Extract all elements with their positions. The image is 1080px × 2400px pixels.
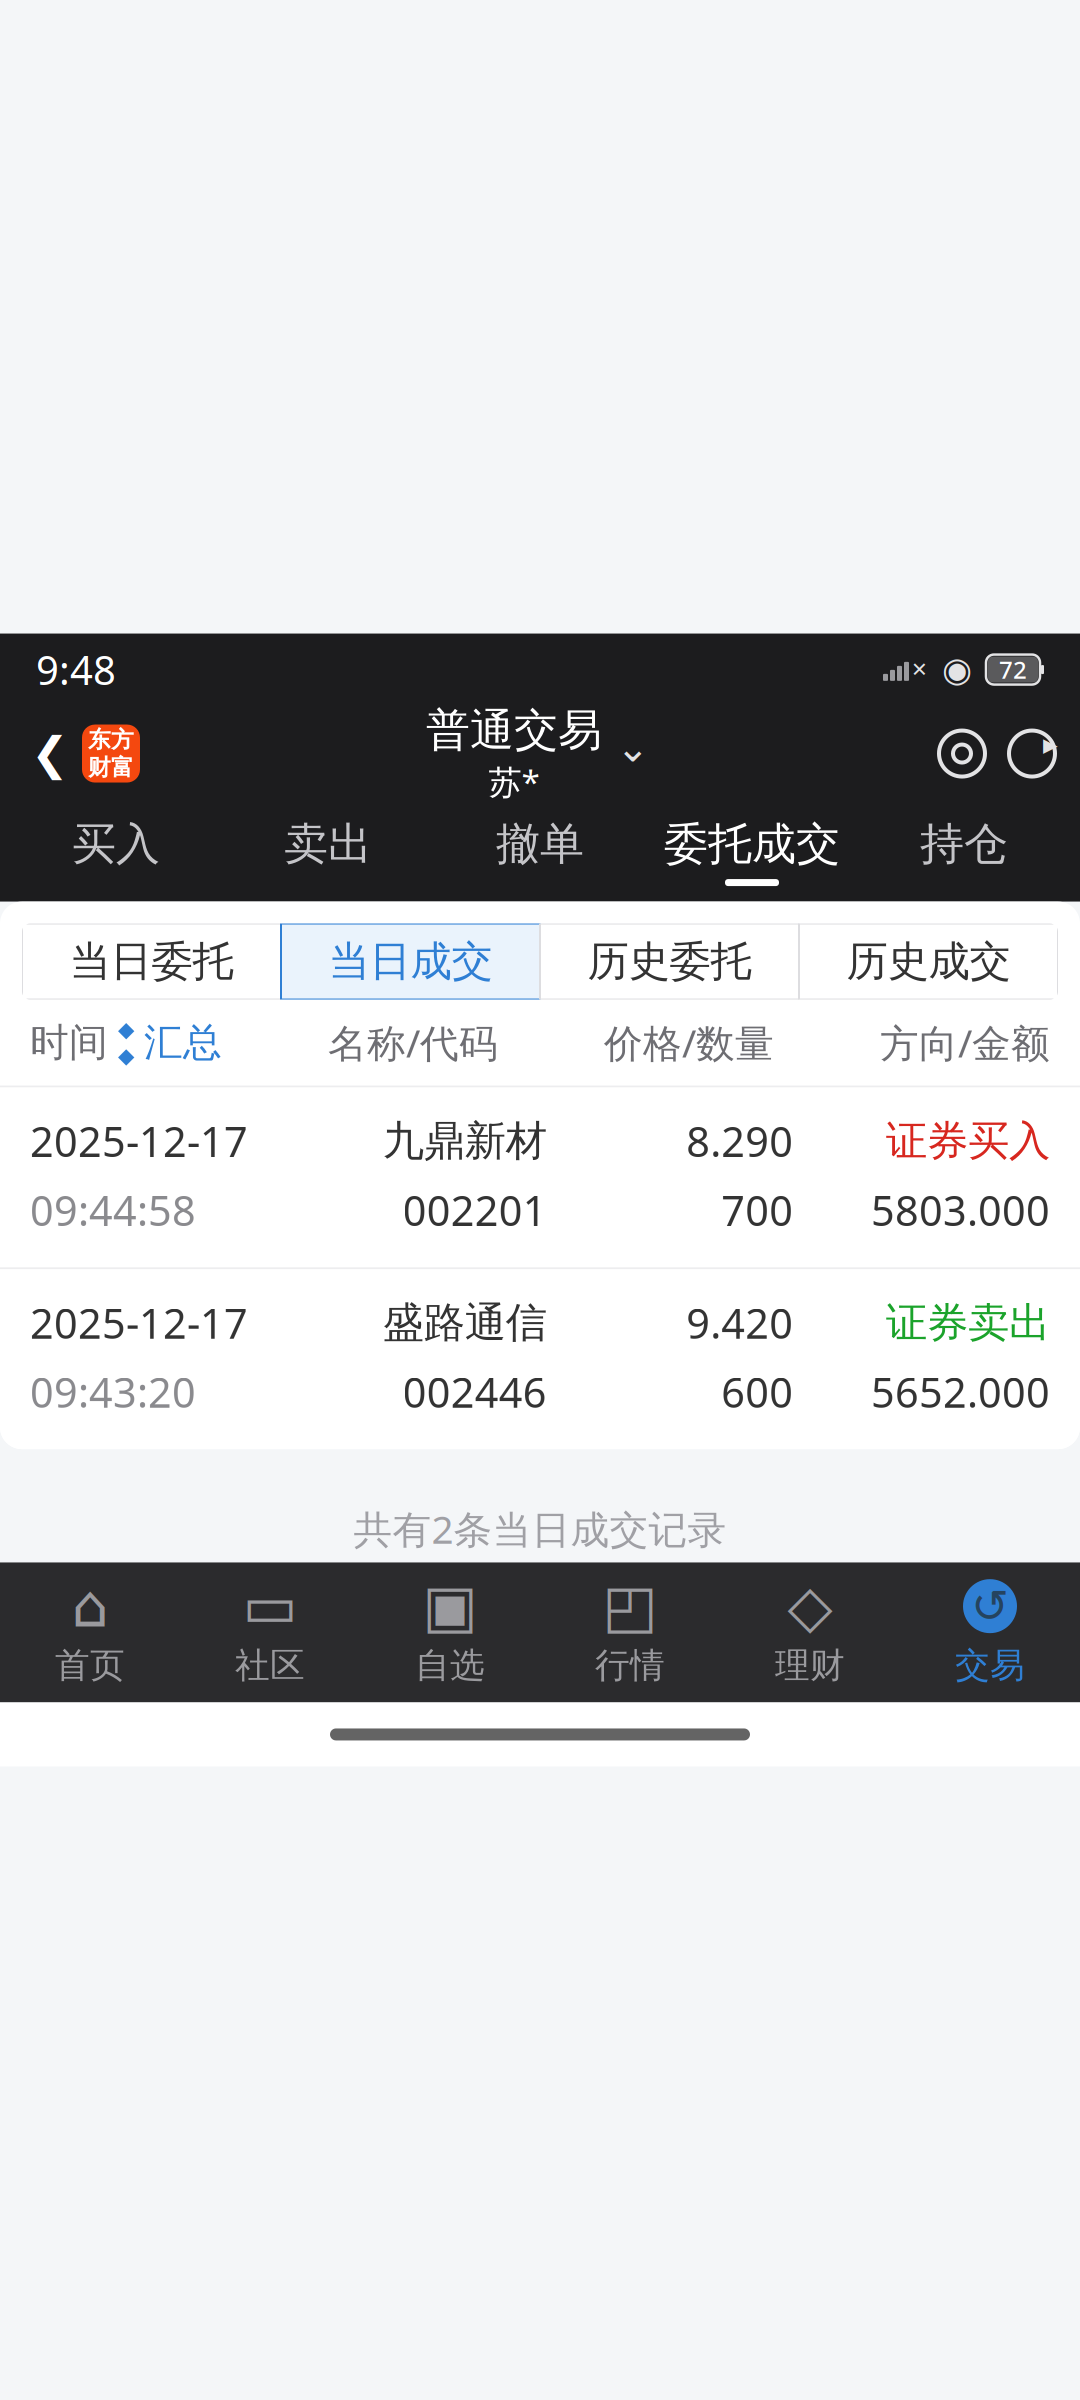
button[interactable]: 买入 — [10, 802, 222, 902]
button[interactable]: 历史成交 — [799, 924, 1058, 1000]
button[interactable]: 当日成交 — [281, 924, 540, 1000]
staticText: 交易 — [955, 1644, 1025, 1687]
staticText: ⌄ — [616, 725, 650, 770]
staticText: ▭ — [242, 1573, 297, 1639]
button[interactable]: 普通交易 — [426, 703, 650, 804]
staticText: 600 — [721, 1364, 793, 1419]
staticText: 历史成交 — [846, 936, 1010, 987]
staticText: 5652.000 — [871, 1364, 1050, 1419]
staticText: 8.290 — [686, 1114, 793, 1168]
button[interactable]: ◰ — [540, 1562, 720, 1702]
staticText: ⌂ — [71, 1573, 108, 1639]
staticText: 证券卖出 — [886, 1297, 1050, 1348]
staticText: 方向/金额 — [880, 1017, 1050, 1068]
staticText: 东方 — [88, 726, 134, 753]
staticText: 价格/数量 — [604, 1017, 774, 1068]
staticText: ▣ — [422, 1573, 477, 1639]
button[interactable]: 刷新 — [988, 728, 1058, 780]
button[interactable]: 撤单 — [434, 802, 646, 902]
staticText: 社区 — [235, 1644, 305, 1687]
staticText: 持仓 — [920, 817, 1008, 871]
staticText: 当日委托 — [69, 936, 233, 987]
button[interactable]: 历史委托 — [540, 924, 799, 1000]
button[interactable]: ▭ — [180, 1562, 360, 1702]
staticText: ↺ — [971, 1580, 1009, 1632]
button[interactable]: 返回 — [22, 718, 78, 790]
staticText: 普通交易 — [426, 703, 602, 757]
staticText: ❮ — [31, 728, 69, 779]
button[interactable]: ◇ — [720, 1562, 900, 1702]
staticText: 共有2条当日成交记录 — [353, 1503, 726, 1554]
button[interactable]: 2025-12-17 — [0, 1088, 1080, 1267]
button[interactable]: 东方财富 — [78, 725, 140, 783]
staticText: 财富 — [88, 754, 134, 781]
button[interactable]: ⌂ — [0, 1562, 180, 1702]
staticText: 首页 — [55, 1644, 125, 1687]
staticText: 5803.000 — [871, 1182, 1050, 1237]
staticText: 2025-12-17 — [30, 1295, 248, 1350]
staticText: 九鼎新材 — [383, 1116, 547, 1166]
button[interactable]: 卖出 — [222, 802, 434, 902]
staticText: 09:43:20 — [30, 1364, 196, 1419]
button[interactable]: ▣ — [360, 1562, 540, 1702]
staticText: 卖出 — [284, 817, 372, 871]
button[interactable]: 委托成交 — [646, 802, 858, 902]
staticText: 9:48 — [36, 643, 116, 696]
staticText: 证券买入 — [886, 1116, 1050, 1166]
staticText: 委托成交 — [664, 817, 840, 871]
staticText: 002446 — [403, 1364, 547, 1419]
staticText: 撤单 — [496, 817, 584, 871]
staticText: 名称/代码 — [328, 1017, 498, 1068]
staticText: ◇ — [787, 1573, 832, 1639]
button[interactable]: 2025-12-17 — [0, 1269, 1080, 1449]
button[interactable]: ↺ — [900, 1562, 1080, 1702]
staticText: 当日成交 — [328, 936, 492, 987]
staticText: 时间 — [30, 1019, 108, 1066]
staticText: 盛路通信 — [383, 1297, 547, 1348]
staticText: 苏* — [488, 759, 539, 804]
staticText: ◉ — [942, 650, 972, 689]
button[interactable]: 时间 — [30, 1019, 222, 1066]
staticText: 行情 — [595, 1644, 665, 1687]
staticText: 买入 — [72, 817, 160, 871]
staticText: ◰ — [602, 1573, 657, 1639]
staticText: 历史委托 — [587, 936, 751, 987]
button[interactable]: 持仓 — [858, 802, 1070, 902]
staticText: ▸ — [1043, 728, 1058, 761]
staticText: 72 — [999, 654, 1027, 685]
staticText: 9.420 — [686, 1295, 793, 1350]
staticText: ◆ — [118, 1044, 134, 1068]
button[interactable]: 当日委托 — [22, 924, 281, 1000]
staticText: 2025-12-17 — [30, 1114, 248, 1168]
staticText: 09:44:58 — [30, 1182, 196, 1237]
button[interactable]: 设置 — [936, 728, 988, 780]
staticText: 自选 — [415, 1644, 485, 1687]
staticText: 理财 — [775, 1644, 845, 1687]
staticText: ✕ — [911, 658, 928, 681]
staticText: ◆ — [118, 1017, 134, 1041]
staticText: 汇总 — [144, 1019, 222, 1066]
staticText: 700 — [721, 1182, 793, 1237]
staticText: 002201 — [403, 1182, 547, 1237]
